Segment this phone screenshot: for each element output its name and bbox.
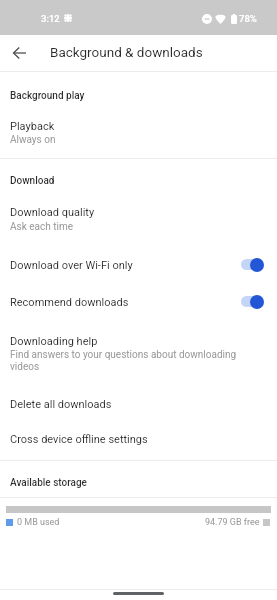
- staticText: Background & downloads: [50, 44, 203, 60]
- button[interactable]: [0, 251, 277, 279]
- staticText: Download: [10, 175, 55, 187]
- staticText: 3:12: [41, 13, 60, 24]
- button[interactable]: [0, 390, 277, 418]
- staticText: Download over Wi-Fi only: [10, 259, 133, 272]
- staticText: Available storage: [10, 477, 87, 489]
- staticText: 78%: [239, 13, 257, 24]
- button[interactable]: [0, 425, 277, 453]
- button[interactable]: [0, 288, 277, 316]
- button[interactable]: [0, 198, 277, 241]
- staticText: 0 MB used: [17, 517, 60, 528]
- staticText: Download quality: [10, 206, 95, 219]
- staticText: Background play: [10, 90, 85, 102]
- staticText: Ask each time: [10, 221, 73, 233]
- button[interactable]: [0, 112, 277, 154]
- staticText: Recommend downloads: [10, 296, 129, 309]
- staticText: 94.79 GB free: [205, 517, 260, 528]
- button[interactable]: [0, 327, 277, 355]
- staticText: Always on: [10, 134, 56, 146]
- staticText: Playback: [10, 120, 55, 133]
- staticText: Delete all downloads: [10, 398, 112, 411]
- button[interactable]: Back: [6, 40, 32, 66]
- staticText: Find answers to your questions about dow…: [10, 349, 255, 372]
- staticText: Cross device offline settings: [10, 433, 148, 446]
- staticText: Downloading help: [10, 335, 98, 348]
